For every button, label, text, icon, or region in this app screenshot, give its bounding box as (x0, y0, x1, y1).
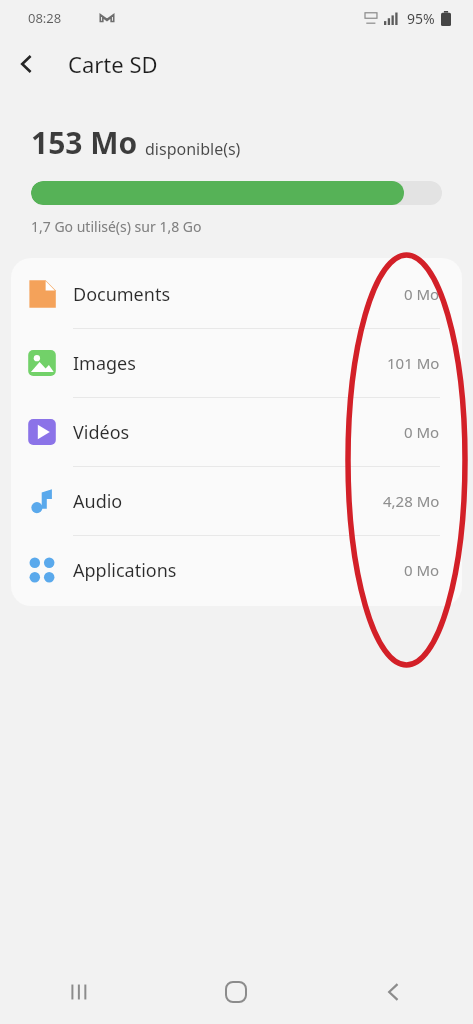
staticText: 1,7 Go utilisé(s) sur 1,8 Go (31, 217, 202, 236)
button[interactable]: Images (11, 329, 462, 397)
button[interactable]: Vidéos (11, 398, 462, 466)
button[interactable]: Back (0, 37, 54, 91)
button[interactable]: Applications (11, 536, 462, 604)
button[interactable]: Documents (11, 260, 462, 328)
staticText: Documents (73, 282, 171, 307)
staticText: Vidéos (73, 420, 130, 445)
staticText: 08:28 (28, 9, 62, 27)
staticText: 101 Mo (387, 353, 440, 373)
staticText: Images (73, 351, 136, 376)
staticText: 4,28 Mo (383, 491, 440, 511)
staticText: 0 Mo (404, 284, 440, 304)
staticText: 95% (407, 9, 435, 28)
staticText: disponible(s) (145, 138, 241, 160)
staticText: 0 Mo (404, 560, 440, 580)
staticText: Audio (73, 489, 123, 514)
staticText: 0 Mo (404, 422, 440, 442)
staticText: 153 Mo (31, 122, 138, 163)
staticText: Carte SD (68, 49, 158, 79)
button[interactable]: Audio (11, 467, 462, 535)
button[interactable]: Home (157, 960, 315, 1024)
button[interactable]: Back (315, 960, 473, 1024)
staticText: Applications (73, 558, 177, 583)
button[interactable]: Recents (0, 960, 157, 1024)
